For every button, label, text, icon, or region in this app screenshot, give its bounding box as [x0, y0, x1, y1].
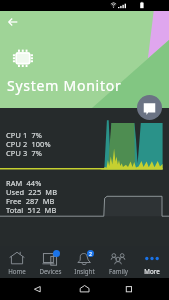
staticText: More: [144, 267, 160, 275]
staticText: CPU 2 100%: [6, 139, 51, 148]
staticText: Insight: [74, 267, 95, 275]
button[interactable]: More: [135, 246, 169, 278]
staticText: System Monitor: [7, 76, 122, 95]
staticText: Total 512 MB: [6, 205, 57, 214]
button[interactable]: Family: [101, 246, 135, 278]
button[interactable]: Back: [5, 14, 21, 30]
staticText: 2: [89, 250, 92, 257]
staticText: RAM 44%: [6, 178, 42, 187]
button[interactable]: Home: [0, 246, 33, 278]
staticText: Family: [109, 267, 128, 275]
staticText: Used 225 MB: [6, 187, 58, 196]
button[interactable]: Help: [137, 95, 162, 120]
staticText: Free 287 MB: [6, 196, 55, 205]
button[interactable]: Devices: [33, 246, 67, 278]
staticText: CPU 3 7%: [6, 148, 42, 157]
staticText: CPU 1 7%: [6, 130, 42, 139]
staticText: Home: [8, 267, 26, 275]
staticText: Devices: [39, 267, 62, 275]
button[interactable]: 2: [67, 246, 101, 278]
